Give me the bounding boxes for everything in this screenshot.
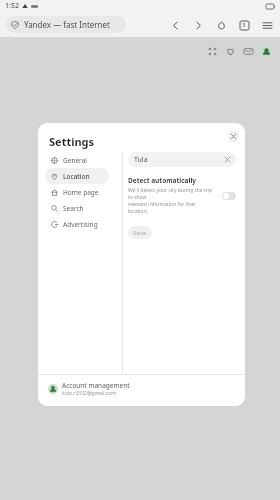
button[interactable]: Back: [168, 18, 182, 32]
button[interactable]: Home: [214, 18, 228, 32]
button[interactable]: Favorites: [225, 46, 236, 57]
staticText: Save: [133, 229, 147, 237]
button[interactable]: Detect automatically toggle: [222, 192, 236, 200]
staticText: Location: [63, 172, 90, 181]
button[interactable]: Advertising: [45, 216, 109, 232]
button[interactable]: Tula: [128, 152, 236, 167]
staticText: 3: [242, 21, 246, 29]
staticText: Detect automatically: [128, 176, 197, 185]
button[interactable]: Services: [207, 46, 218, 57]
staticText: Account management: [62, 381, 130, 390]
button[interactable]: Forward: [191, 18, 205, 32]
button[interactable]: Mail: [243, 46, 254, 57]
staticText: Search: [63, 204, 84, 213]
button[interactable]: Account management: [48, 381, 130, 397]
button[interactable]: Location: [45, 168, 109, 184]
button[interactable]: Menu: [260, 18, 274, 32]
staticText: General: [63, 156, 87, 165]
button[interactable]: Search: [45, 200, 109, 216]
button[interactable]: Tabs: [237, 18, 251, 32]
staticText: We'll detect your city during the trip t…: [128, 187, 216, 215]
staticText: Yandex — fast Internet sea: [24, 19, 121, 30]
staticText: Advertising: [63, 220, 98, 229]
button[interactable]: Detect automatically: [128, 176, 236, 215]
staticText: 1:52: [5, 1, 19, 11]
staticText: Home page: [63, 188, 99, 197]
button[interactable]: Close: [228, 131, 239, 142]
staticText: Tula: [134, 155, 148, 165]
button[interactable]: Home page: [45, 184, 109, 200]
button[interactable]: Account: [261, 46, 272, 57]
staticText: kolo.r3332@gmail.com: [62, 390, 116, 397]
button[interactable]: Yandex — fast Internet sea: [6, 16, 126, 33]
staticText: Settings: [49, 134, 95, 149]
button[interactable]: Save: [128, 226, 152, 239]
button[interactable]: General: [45, 152, 109, 168]
